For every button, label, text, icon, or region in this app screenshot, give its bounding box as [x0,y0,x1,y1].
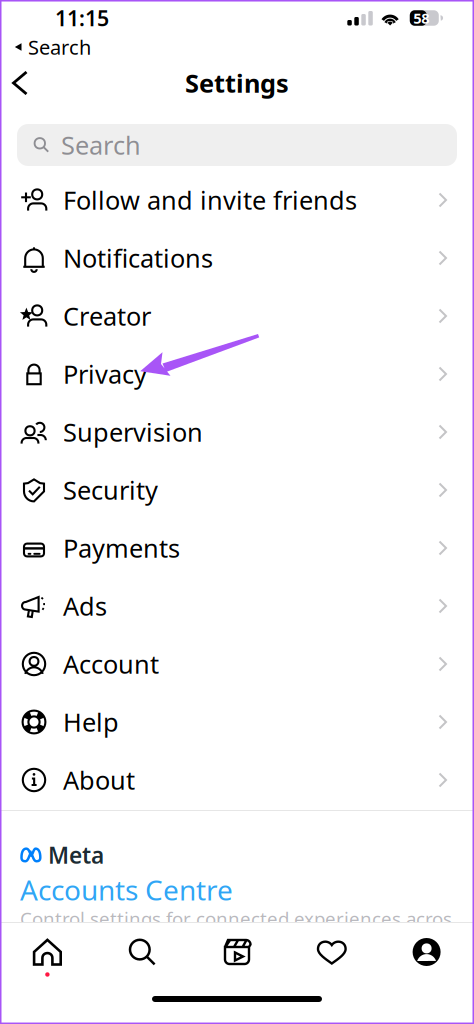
button[interactable]: Creator [0,287,474,345]
staticText: About [63,763,135,797]
staticText: Meta [48,840,104,870]
staticText: Supervision [63,415,203,449]
staticText: Control settings for connected experienc… [20,906,474,931]
button[interactable]: Back [0,58,44,108]
staticText: Creator [63,299,151,333]
button[interactable]: Search [0,108,474,166]
staticText: Security [63,473,158,507]
button[interactable]: Help [0,693,474,751]
staticText: Help [63,705,119,739]
button[interactable]: About [0,751,474,809]
staticText: Privacy [63,357,147,391]
staticText: Payments [63,531,180,565]
staticText: Search [28,34,91,60]
button[interactable]: Accounts Centre [20,870,464,908]
staticText: Account [63,647,159,681]
button[interactable]: Activity [284,923,379,981]
staticText: 11:15 [55,4,109,32]
staticText: Accounts Centre [20,871,233,908]
button[interactable]: Notifications [0,229,474,287]
staticText: Search [61,128,141,162]
button[interactable]: Supervision [0,403,474,461]
button[interactable]: Follow and invite friends [0,171,474,229]
button[interactable]: Profile [379,923,474,981]
button[interactable]: Account [0,635,474,693]
staticText: 58 [413,8,429,28]
button[interactable]: Home [0,923,95,981]
button[interactable]: Privacy [0,345,474,403]
button[interactable]: Security [0,461,474,519]
staticText: Notifications [63,241,213,275]
staticText: Settings [185,66,289,100]
button[interactable]: Reels [190,923,284,981]
button[interactable]: Search [95,923,190,981]
staticText: Ads [63,589,107,623]
staticText: Follow and invite friends [63,183,357,217]
button[interactable]: Ads [0,577,474,635]
button[interactable]: Payments [0,519,474,577]
